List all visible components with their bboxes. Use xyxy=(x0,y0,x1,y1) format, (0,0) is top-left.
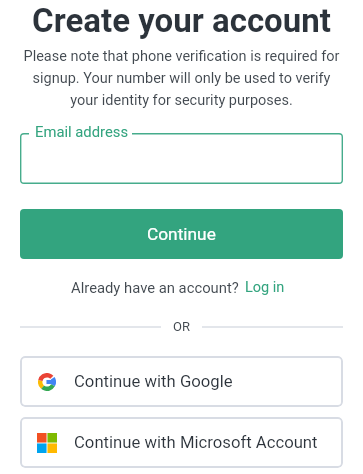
button[interactable]: Log in xyxy=(245,279,285,296)
button[interactable]: Google logo xyxy=(20,356,343,407)
staticText: OR xyxy=(173,319,190,334)
other: Microsoft logo xyxy=(37,433,57,453)
staticText: Already have an account? xyxy=(71,279,239,296)
button[interactable]: Microsoft logo xyxy=(20,417,343,468)
staticText: Please note that phone verification is r… xyxy=(20,48,343,109)
staticText: Log in xyxy=(245,279,285,296)
staticText: Continue with Microsoft Account xyxy=(74,433,318,453)
staticText: Continue with Google xyxy=(74,372,233,392)
staticText: Create your account xyxy=(20,1,343,40)
staticText: Continue xyxy=(147,224,216,244)
staticText: Email address xyxy=(35,123,129,140)
button[interactable]: Continue xyxy=(20,209,343,259)
other: Google logo xyxy=(38,373,56,391)
button[interactable]: Email address xyxy=(20,133,343,184)
